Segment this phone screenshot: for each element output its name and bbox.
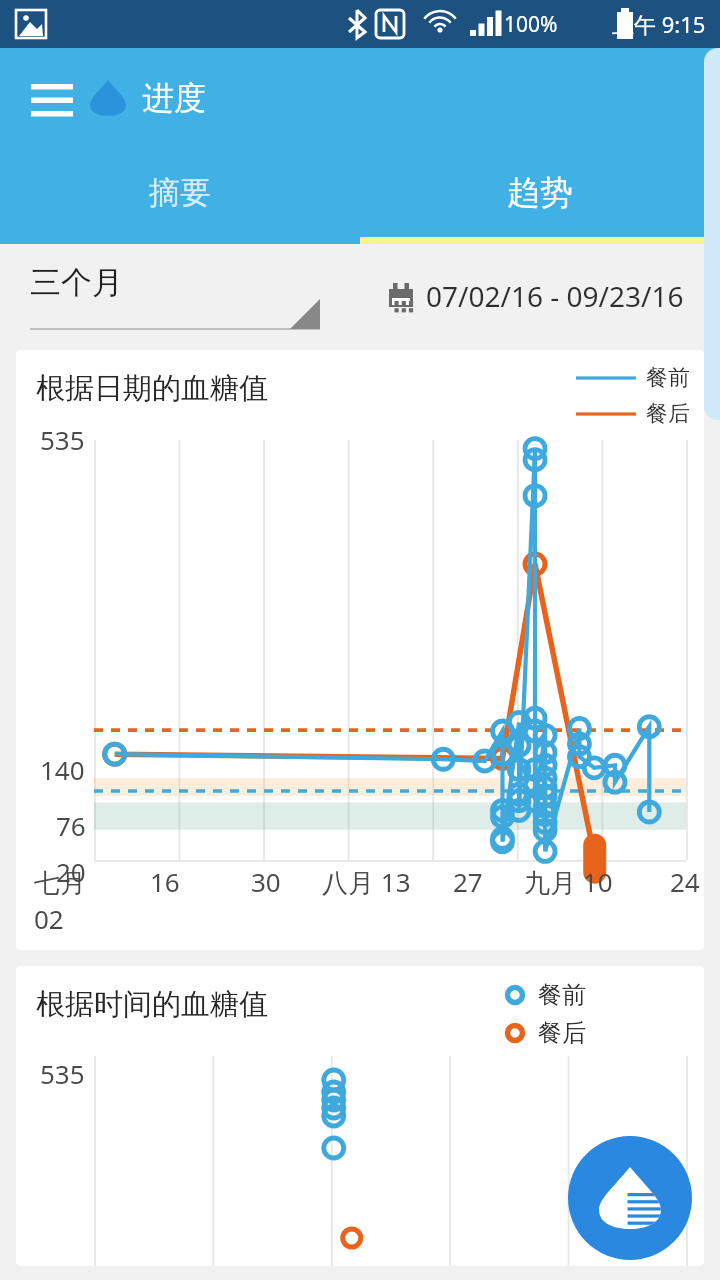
staticText: 16 bbox=[150, 864, 180, 899]
staticText: 餐后 bbox=[538, 1018, 586, 1048]
button[interactable] bbox=[704, 48, 720, 420]
staticText: 摘要 bbox=[149, 173, 211, 212]
staticText: 20 bbox=[56, 854, 86, 889]
staticText: 趋势 bbox=[507, 172, 573, 214]
button[interactable]: Menu bbox=[24, 70, 80, 126]
staticText: 24 bbox=[670, 864, 700, 899]
staticText: 07/02/16 - 09/23/16 bbox=[426, 277, 684, 315]
staticText: 七月 02 bbox=[34, 864, 114, 936]
staticText: 进度 bbox=[142, 78, 206, 118]
staticText: 30 bbox=[251, 864, 281, 899]
staticText: 餐前 bbox=[538, 980, 586, 1010]
staticText: 八月 13 bbox=[322, 864, 411, 900]
staticText: 上午 9:15 bbox=[612, 9, 706, 39]
staticText: 27 bbox=[453, 864, 483, 899]
staticText: 餐前 bbox=[646, 364, 690, 392]
button[interactable]: 趋势 bbox=[360, 148, 720, 237]
staticText: 九月 10 bbox=[524, 864, 613, 900]
staticText: 根据日期的血糖值 bbox=[36, 370, 268, 407]
button[interactable]: Add glucose reading bbox=[568, 1136, 692, 1260]
staticText: 餐后 bbox=[646, 400, 690, 428]
staticText: 535 bbox=[40, 1056, 85, 1091]
button[interactable]: 三个月 bbox=[30, 263, 320, 330]
staticText: 三个月 bbox=[30, 263, 123, 302]
button[interactable]: 07/02/16 - 09/23/16 bbox=[388, 277, 684, 315]
button[interactable]: 根据日期的血糖值 bbox=[16, 350, 704, 950]
button[interactable]: 摘要 bbox=[0, 148, 360, 237]
staticText: 140 bbox=[40, 752, 85, 787]
staticText: 根据时间的血糖值 bbox=[36, 986, 268, 1023]
staticText: 76 bbox=[56, 808, 86, 843]
button[interactable]: 根据时间的血糖值 bbox=[16, 966, 704, 1266]
staticText: 535 bbox=[40, 422, 85, 457]
staticText: 100% bbox=[504, 10, 558, 39]
